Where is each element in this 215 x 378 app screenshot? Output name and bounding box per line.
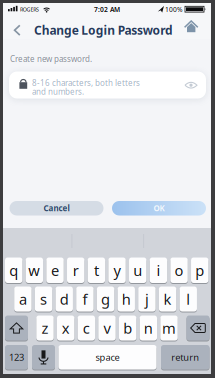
button[interactable]: t xyxy=(88,257,105,283)
button[interactable]: u xyxy=(129,257,146,283)
staticText: and numbers. xyxy=(32,86,84,97)
staticText: 123 xyxy=(9,351,24,363)
button[interactable] xyxy=(184,20,198,33)
button[interactable]: l xyxy=(180,286,197,311)
staticText: return xyxy=(171,351,199,363)
button[interactable]: d xyxy=(55,286,73,311)
button[interactable]: 8-16 characters, both letters xyxy=(9,71,206,98)
staticText: Create new password. xyxy=(10,53,92,64)
button[interactable]: space xyxy=(58,345,156,369)
button[interactable]: r xyxy=(67,257,84,283)
button[interactable]: o xyxy=(170,257,188,283)
button[interactable]: j xyxy=(138,286,156,311)
staticText: o xyxy=(175,260,184,280)
button[interactable]: OK xyxy=(112,201,206,215)
staticText: d xyxy=(60,289,69,309)
staticText: n xyxy=(144,318,153,338)
staticText: c xyxy=(83,318,90,338)
staticText: p xyxy=(195,260,204,280)
button[interactable]: k xyxy=(159,286,176,311)
staticText: l xyxy=(186,289,190,309)
button[interactable]: s xyxy=(35,286,52,311)
button[interactable]: a xyxy=(14,286,32,311)
button[interactable]: 123 xyxy=(5,345,28,369)
button[interactable]: Cancel xyxy=(9,201,103,215)
staticText: q xyxy=(9,260,18,280)
button[interactable]: h xyxy=(118,286,135,311)
staticText: h xyxy=(122,289,131,309)
staticText: t xyxy=(94,260,99,280)
button[interactable] xyxy=(32,345,55,369)
staticText: Change Login Password xyxy=(34,22,173,38)
button[interactable] xyxy=(5,315,28,340)
staticText: OK xyxy=(153,203,164,213)
button[interactable] xyxy=(184,81,197,89)
staticText: ROGERS xyxy=(20,6,39,13)
button[interactable]: m xyxy=(160,315,178,340)
button[interactable]: f xyxy=(76,286,94,311)
button[interactable] xyxy=(9,23,25,37)
button[interactable]: return xyxy=(161,345,209,369)
button[interactable]: p xyxy=(191,257,208,283)
staticText: z xyxy=(41,318,48,338)
button[interactable]: y xyxy=(108,257,126,283)
staticText: 7:02 AM xyxy=(94,5,120,14)
staticText: s xyxy=(40,289,47,309)
button[interactable]: b xyxy=(119,315,136,340)
staticText: v xyxy=(103,318,110,338)
staticText: k xyxy=(164,289,172,309)
button[interactable]: q xyxy=(5,257,22,283)
staticText: 8-16 characters, both letters xyxy=(32,78,140,88)
staticText: y xyxy=(114,260,121,280)
button[interactable]: g xyxy=(97,286,114,311)
staticText: x xyxy=(62,318,70,338)
button[interactable]: v xyxy=(98,315,116,340)
staticText: m xyxy=(162,318,176,338)
staticText: i xyxy=(156,260,160,280)
staticText: g xyxy=(101,289,110,309)
staticText: 100% xyxy=(165,5,183,14)
staticText: j xyxy=(145,289,149,309)
staticText: w xyxy=(28,260,40,280)
button[interactable]: z xyxy=(36,315,54,340)
staticText: b xyxy=(123,318,132,338)
button[interactable]: w xyxy=(26,257,43,283)
button[interactable] xyxy=(186,315,209,340)
button[interactable]: x xyxy=(57,315,74,340)
button[interactable]: e xyxy=(46,257,64,283)
staticText: space xyxy=(95,351,119,363)
staticText: a xyxy=(19,289,27,309)
button[interactable]: c xyxy=(78,315,95,340)
button[interactable]: n xyxy=(140,315,157,340)
staticText: Cancel xyxy=(43,203,69,213)
staticText: u xyxy=(133,260,142,280)
staticText: e xyxy=(51,260,59,280)
staticText: r xyxy=(73,260,79,280)
staticText: f xyxy=(82,289,87,309)
button[interactable]: i xyxy=(150,257,167,283)
